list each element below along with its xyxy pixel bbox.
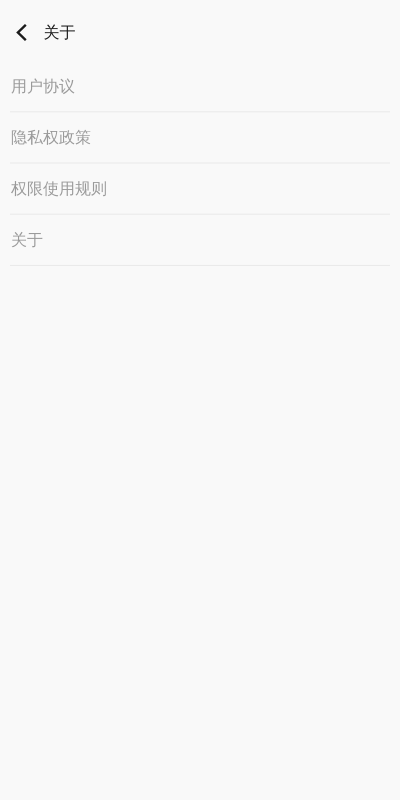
- staticText: 关于: [43, 22, 75, 42]
- button[interactable]: 权限使用规则: [0, 164, 400, 215]
- staticText: 关于: [11, 230, 43, 250]
- staticText: 权限使用规则: [11, 179, 107, 199]
- button[interactable]: 用户协议: [0, 61, 400, 112]
- staticText: 隐私权政策: [11, 128, 91, 147]
- button[interactable]: Back: [0, 0, 43, 61]
- staticText: 用户协议: [11, 76, 75, 96]
- button[interactable]: 隐私权政策: [0, 112, 400, 164]
- button[interactable]: 关于: [0, 215, 400, 266]
